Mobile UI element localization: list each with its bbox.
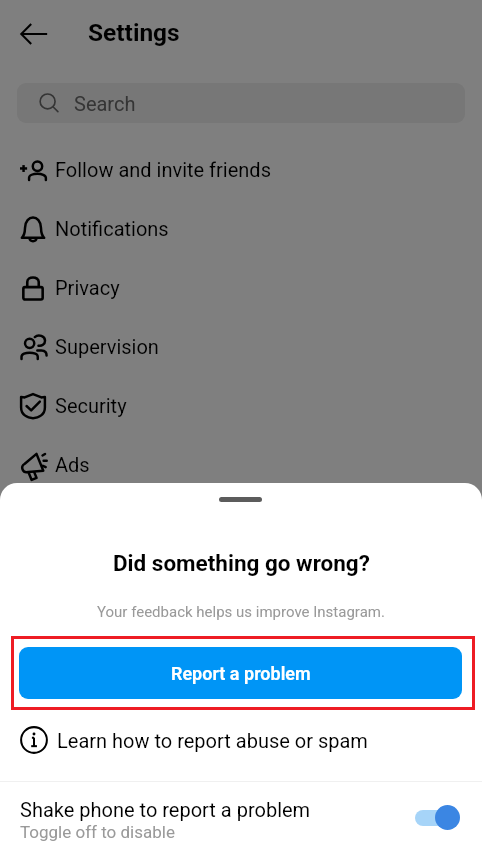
button[interactable]: Close sheet: [0, 0, 482, 867]
staticText: Toggle off to disable: [20, 822, 175, 842]
button[interactable]: Back: [11, 11, 56, 56]
button[interactable]: Security: [0, 376, 482, 435]
staticText: Report a problem: [171, 663, 311, 684]
staticText: Search: [74, 92, 136, 115]
button[interactable]: Shake phone to report a problem: [0, 790, 482, 850]
button[interactable]: Search: [17, 83, 465, 123]
button[interactable]: Follow and invite friends: [0, 140, 482, 199]
staticText: Ads: [55, 453, 90, 476]
button[interactable]: Ads: [0, 435, 482, 494]
staticText: Settings: [88, 18, 180, 47]
staticText: Privacy: [55, 276, 120, 299]
staticText: Supervision: [55, 335, 159, 358]
staticText: Your feedback helps us improve Instagram…: [97, 603, 385, 621]
staticText: Learn how to report abuse or spam: [57, 729, 368, 752]
staticText: Did something go wrong?: [113, 550, 370, 576]
staticText: Notifications: [55, 217, 169, 240]
staticText: Shake phone to report a problem: [20, 798, 311, 821]
button[interactable]: Notifications: [0, 199, 482, 258]
staticText: Security: [55, 394, 127, 417]
staticText: Follow and invite friends: [55, 158, 271, 181]
button[interactable]: Supervision: [0, 317, 482, 376]
button[interactable]: Report a problem: [19, 647, 462, 699]
button[interactable]: Shake phone to report a problem toggle: [408, 800, 468, 834]
button[interactable]: Privacy: [0, 258, 482, 317]
button[interactable]: Learn how to report abuse or spam: [0, 716, 482, 764]
